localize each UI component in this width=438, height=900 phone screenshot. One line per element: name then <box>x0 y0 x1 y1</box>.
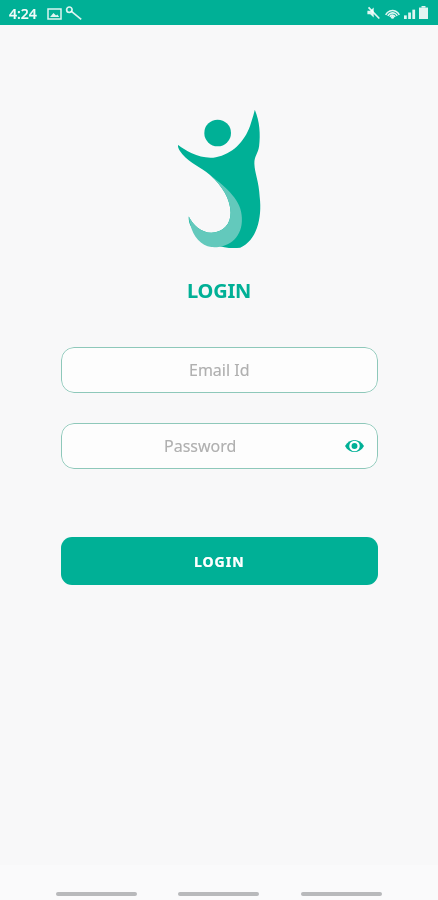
button[interactable]: Recents <box>56 876 137 900</box>
button[interactable]: Email Id <box>61 347 378 393</box>
button[interactable]: Back <box>301 876 382 900</box>
button[interactable]: Home <box>178 876 259 900</box>
staticText: 4:24 <box>9 4 37 23</box>
staticText: LOGIN <box>187 277 252 304</box>
button[interactable]: LOGIN <box>61 537 378 585</box>
button[interactable]: Show password <box>341 433 367 459</box>
button[interactable]: Password <box>61 423 378 469</box>
staticText: Email Id <box>189 359 250 381</box>
staticText: LOGIN <box>194 552 245 571</box>
staticText: Password <box>164 435 237 457</box>
